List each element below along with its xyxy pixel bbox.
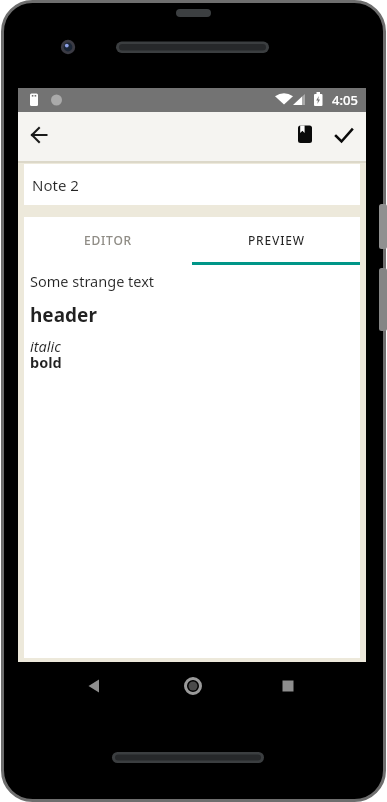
- staticText: bold: [30, 352, 62, 372]
- staticText: PREVIEW: [248, 232, 305, 248]
- button[interactable]: PREVIEW: [192, 217, 360, 262]
- button[interactable]: Note 2: [24, 164, 360, 205]
- button[interactable]: [22, 119, 54, 151]
- staticText: italic: [30, 336, 61, 356]
- staticText: EDITOR: [84, 232, 133, 248]
- staticText: header: [30, 302, 97, 328]
- button[interactable]: [250, 662, 366, 713]
- button[interactable]: [134, 662, 250, 713]
- button[interactable]: [18, 662, 134, 713]
- button[interactable]: [289, 119, 321, 151]
- staticText: 4:05: [332, 91, 358, 109]
- staticText: Some strange text: [30, 271, 155, 291]
- button[interactable]: [328, 119, 360, 151]
- button[interactable]: EDITOR: [24, 217, 192, 262]
- staticText: Note 2: [32, 175, 79, 195]
